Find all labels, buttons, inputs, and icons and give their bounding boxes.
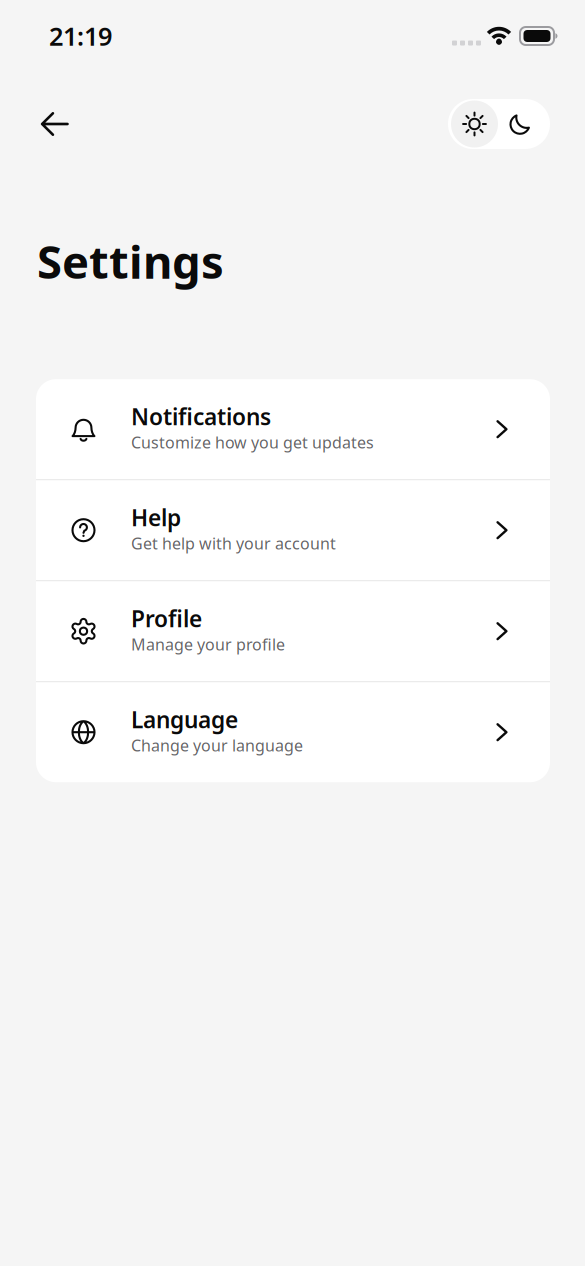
button[interactable]: Notifications: [36, 379, 550, 479]
staticText: Manage your profile: [131, 634, 285, 655]
staticText: Help: [131, 502, 181, 533]
staticText: Get help with your account: [131, 533, 336, 554]
button[interactable]: Back: [34, 99, 76, 149]
staticText: Customize how you get updates: [131, 432, 374, 453]
staticText: Profile: [131, 603, 202, 634]
button[interactable]: Light appearance: [450, 101, 499, 147]
button[interactable]: Language: [36, 682, 550, 782]
staticText: Language: [131, 704, 238, 735]
staticText: Change your language: [131, 735, 303, 756]
button[interactable]: Profile: [36, 581, 550, 681]
button[interactable]: Help: [36, 480, 550, 580]
staticText: Notifications: [131, 401, 271, 432]
staticText: Settings: [37, 231, 224, 291]
button[interactable]: Dark appearance: [499, 101, 548, 147]
staticText: 21:19: [49, 19, 112, 53]
